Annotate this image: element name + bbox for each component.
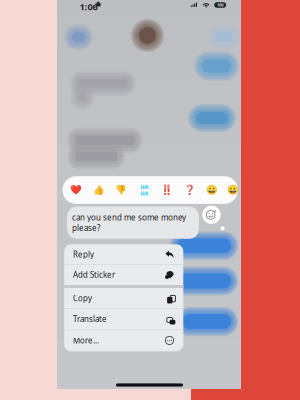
button[interactable]: Reply — [64, 244, 183, 265]
staticText: ❓ — [184, 185, 196, 195]
staticText: 100 — [217, 2, 223, 8]
staticText: 😀 — [206, 185, 218, 195]
staticText: HA — [141, 183, 149, 190]
button[interactable]: Copy — [64, 288, 183, 308]
button[interactable]: More... — [64, 330, 183, 351]
staticText: Copy — [73, 293, 92, 303]
staticText: Add Sticker — [73, 269, 115, 280]
button[interactable]: Add Sticker — [64, 264, 183, 285]
staticText: can you send me some money please? — [72, 212, 186, 233]
staticText: Translate — [73, 314, 107, 324]
staticText: 1:06 — [80, 0, 98, 13]
button[interactable]: Translate — [64, 309, 183, 329]
staticText: ❤️ — [70, 185, 82, 195]
staticText: More... — [73, 335, 99, 346]
staticText: HA — [141, 190, 149, 197]
staticText: ‼️ — [161, 185, 173, 195]
staticText: 😀 — [227, 185, 239, 195]
staticText: 👍 — [93, 185, 105, 195]
staticText: Reply — [73, 249, 94, 260]
staticText: 👎 — [115, 185, 127, 195]
